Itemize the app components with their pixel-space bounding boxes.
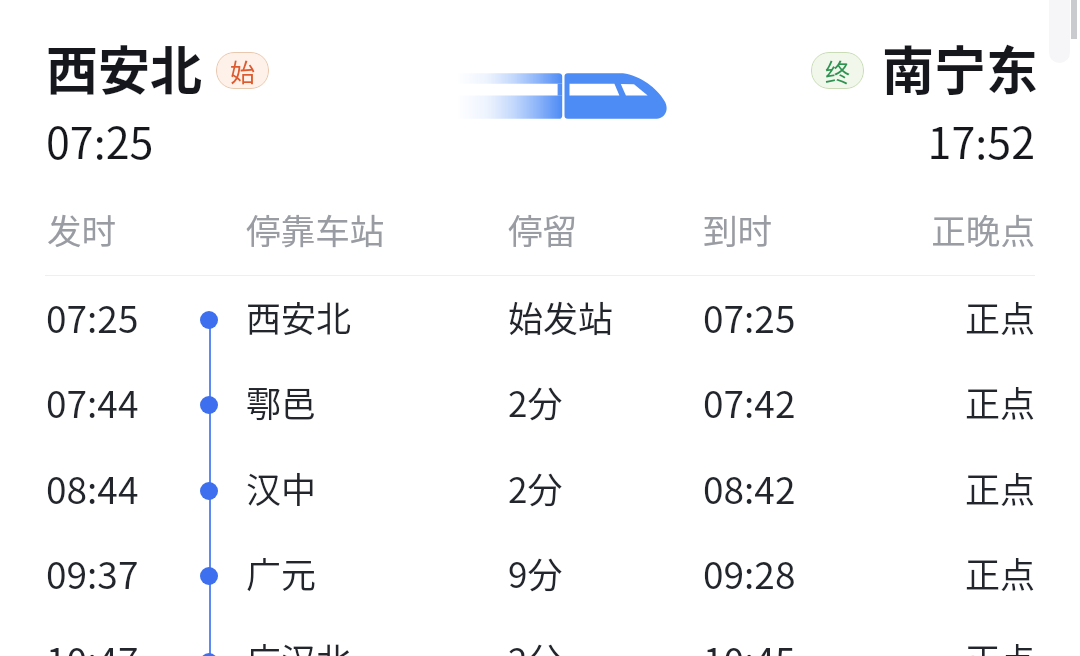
button[interactable]: 西安北 [40, 26, 280, 166]
button[interactable]: 09:37 [0, 533, 1080, 618]
button[interactable]: 终 [811, 52, 864, 89]
button[interactable]: 07:44 [0, 362, 1080, 447]
staticText: 发时 [47, 204, 117, 254]
staticText: 10:45 [703, 632, 796, 656]
staticText: 正晚点 [833, 204, 1035, 254]
button[interactable]: 07:25 [0, 277, 1080, 362]
staticText: 正点 [833, 462, 1035, 513]
staticText: 汉中 [246, 462, 317, 513]
staticText: 08:42 [703, 461, 796, 515]
staticText: 终 [825, 53, 851, 89]
staticText: 正点 [833, 376, 1035, 427]
staticText: 07:44 [46, 375, 139, 429]
staticText: 正点 [833, 547, 1035, 598]
staticText: 07:25 [703, 290, 796, 344]
staticText: 西安北 [246, 291, 352, 342]
staticText: 9分 [508, 547, 563, 598]
staticText: 南宁东 [882, 30, 1039, 105]
staticText: 始发站 [508, 291, 614, 342]
staticText: 西安北 [46, 30, 203, 105]
staticText: 2分 [508, 633, 563, 656]
staticText: 17:52 [833, 109, 1035, 171]
staticText: 正点 [833, 633, 1035, 656]
staticText: 07:25 [46, 290, 139, 344]
staticText: 广元 [246, 547, 317, 598]
staticText: 07:42 [703, 375, 796, 429]
staticText: 07:25 [46, 109, 154, 171]
staticText: 2分 [508, 376, 563, 427]
other: High speed train [450, 66, 680, 126]
staticText: 09:37 [46, 546, 139, 600]
staticText: 2分 [508, 462, 563, 513]
button[interactable]: 08:44 [0, 448, 1080, 533]
staticText: 10:47 [46, 632, 139, 656]
staticText: 停留 [508, 204, 578, 254]
staticText: 正点 [833, 291, 1035, 342]
staticText: 广汉北 [246, 633, 352, 656]
staticText: 09:28 [703, 546, 796, 600]
staticText: 鄠邑 [246, 376, 317, 427]
button[interactable]: 南宁东 [833, 26, 1040, 166]
button[interactable]: 10:47 [0, 619, 1080, 656]
staticText: 停靠车站 [246, 204, 385, 254]
button[interactable]: 始 [216, 52, 269, 89]
staticText: 08:44 [46, 461, 139, 515]
staticText: 到时 [703, 204, 773, 254]
staticText: 始 [230, 53, 256, 89]
